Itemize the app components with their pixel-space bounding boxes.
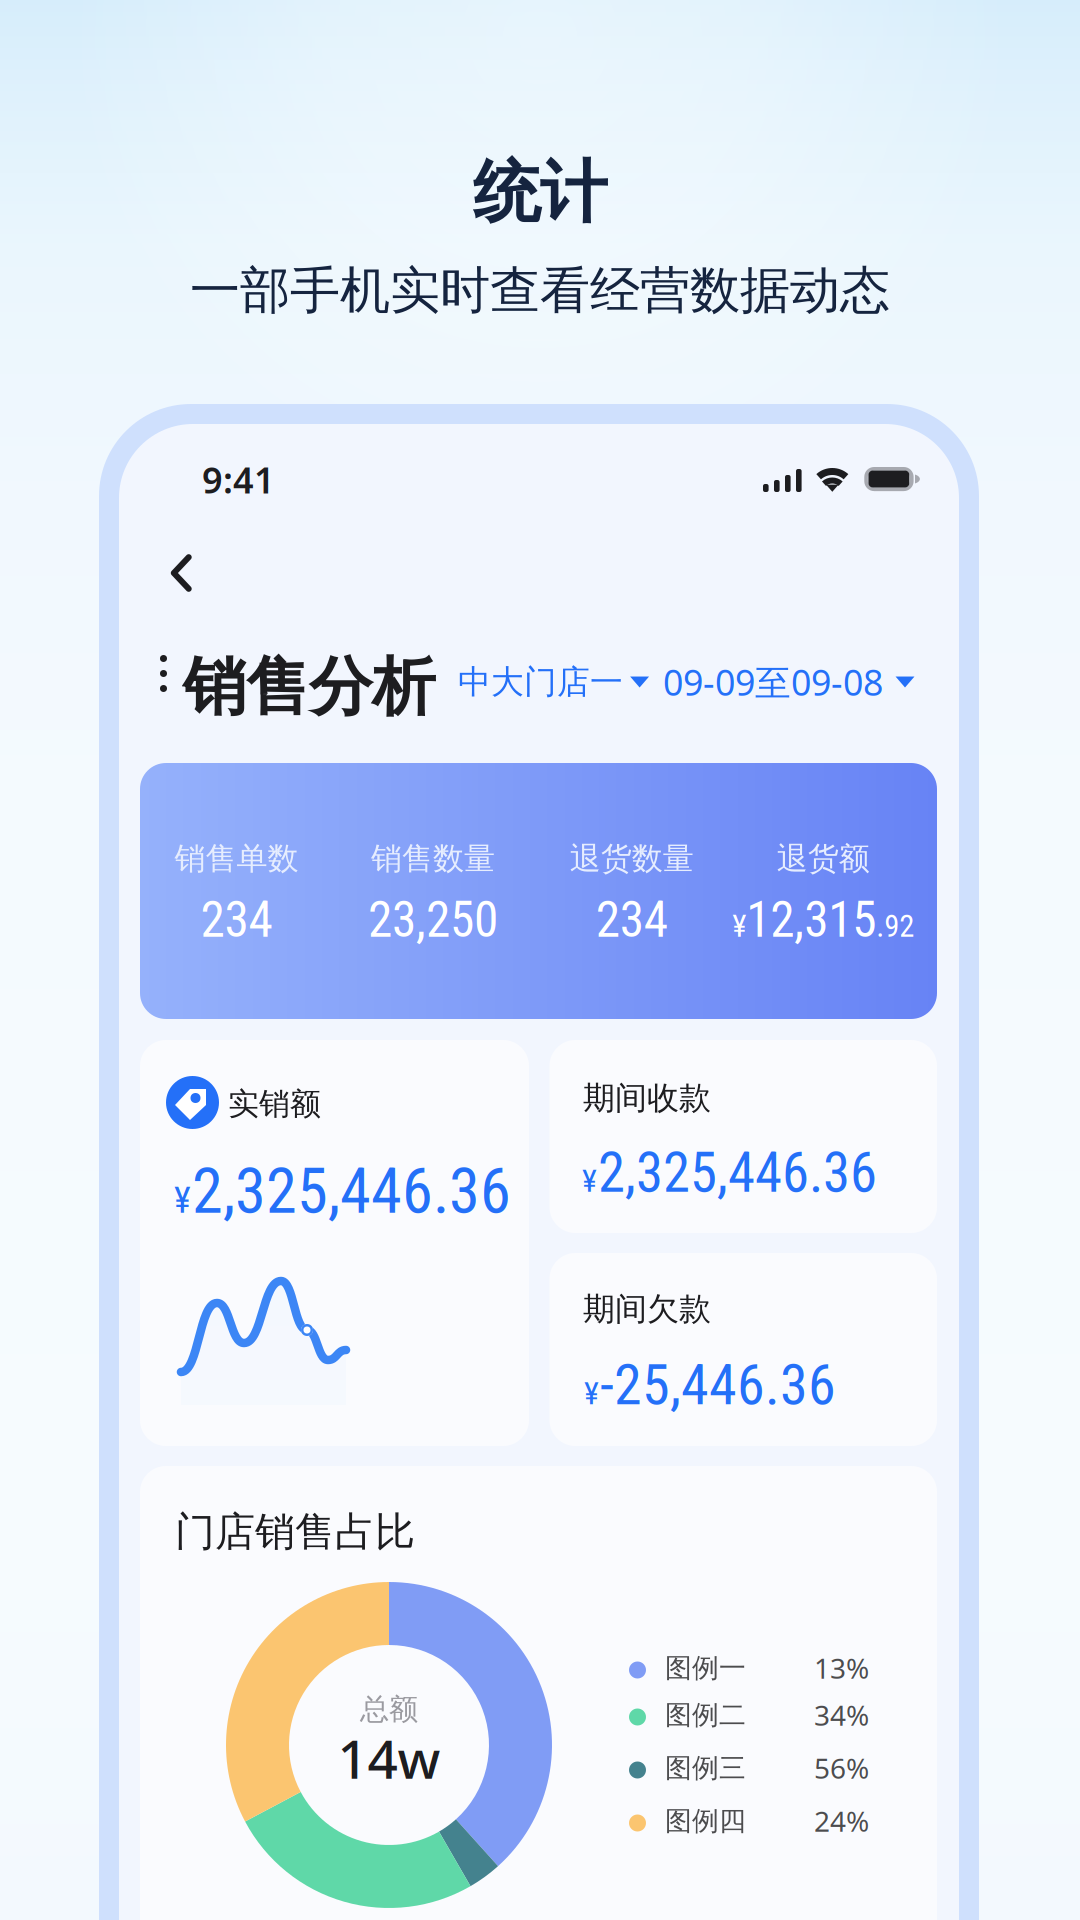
staticText: 12,315 (746, 891, 876, 949)
staticText: 期间收款 (583, 1078, 711, 1118)
staticText: 2,325,446.36 (598, 1141, 877, 1205)
staticText: 9:41 (202, 455, 275, 504)
staticText: -25,446.36 (600, 1352, 836, 1418)
staticText: 24% (814, 1802, 869, 1840)
staticText: 退货数量 (570, 839, 694, 878)
staticText: ¥ (174, 1179, 191, 1222)
button[interactable]: Back (0, 0, 1080, 1920)
staticText: ¥ (582, 1162, 597, 1199)
staticText: 退货额 (777, 839, 870, 878)
staticText: 34% (814, 1696, 869, 1734)
staticText: ¥ (584, 1375, 599, 1412)
staticText: 销售单数 (174, 839, 298, 878)
button[interactable]: 09-09至09-08 (0, 0, 280, 52)
staticText: ¥ (732, 908, 746, 944)
staticText: 14w (337, 1722, 440, 1794)
staticText: .92 (876, 908, 914, 944)
staticText: 13% (814, 1649, 869, 1687)
staticText: 234 (200, 891, 272, 949)
staticText: 实销额 (228, 1084, 321, 1123)
staticText: 09-09至09-08 (663, 658, 883, 706)
staticText: 234 (596, 891, 668, 949)
staticText: 图例一 (665, 1651, 746, 1685)
staticText: 图例二 (665, 1698, 746, 1732)
staticText: 图例三 (665, 1751, 746, 1785)
staticText: 一部手机实时查看经营数据动态 (190, 259, 890, 322)
staticText: 中大门店一 (458, 661, 623, 703)
staticText: 销售数量 (371, 839, 495, 878)
staticText: 图例四 (665, 1804, 746, 1838)
staticText: 统计 (473, 150, 607, 235)
staticText: 2,325,446.36 (192, 1155, 511, 1228)
staticText: 23,250 (368, 891, 498, 949)
staticText: 门店销售占比 (175, 1507, 415, 1557)
staticText: 期间欠款 (583, 1289, 711, 1329)
staticText: 销售分析 (183, 647, 435, 727)
staticText: 总额 (360, 1691, 418, 1728)
staticText: 56% (814, 1749, 869, 1787)
